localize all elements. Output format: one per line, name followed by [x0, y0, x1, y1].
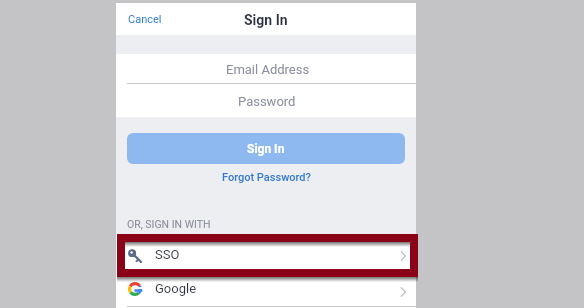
other: Sign in with SSO [128, 249, 142, 263]
staticText: Sign In [247, 142, 285, 156]
staticText: SSO [155, 247, 180, 262]
staticText: Cancel [128, 13, 162, 26]
button[interactable]: Forgot Password? [214, 165, 319, 190]
staticText: Google [155, 281, 197, 296]
button[interactable]: Sign In [127, 133, 405, 164]
button[interactable]: Sign in with SSO [116, 242, 416, 269]
other: Sign in with Google [128, 282, 142, 296]
other: Open [398, 251, 408, 261]
staticText: Forgot Password? [222, 171, 311, 184]
staticText: Sign In [244, 12, 288, 28]
button[interactable]: Password [116, 84, 416, 117]
button[interactable]: Sign in with Google [116, 275, 416, 308]
button[interactable]: Email Address [116, 54, 416, 83]
staticText: Email Address [226, 62, 310, 77]
staticText: Password [238, 94, 296, 109]
button[interactable]: Cancel [116, 5, 174, 33]
staticText: OR, SIGN IN WITH [127, 218, 211, 230]
other: Open [398, 287, 408, 297]
